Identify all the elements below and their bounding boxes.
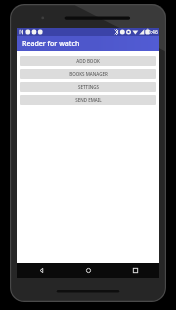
staticText: ADD BOOK	[76, 58, 100, 64]
button[interactable]: BOOKS MANAGER	[20, 69, 156, 79]
staticText: SEND EMAIL	[75, 97, 102, 103]
button[interactable]: Back	[17, 263, 65, 278]
staticText: Reader for watch	[22, 39, 80, 49]
staticText: 00:46	[145, 29, 158, 36]
button[interactable]: ADD BOOK	[20, 56, 156, 66]
staticText: BOOKS MANAGER	[69, 71, 108, 77]
button[interactable]: Recent apps	[112, 263, 159, 278]
staticText: SETTINGS	[78, 84, 99, 90]
button[interactable]: SEND EMAIL	[20, 95, 156, 105]
button[interactable]: SETTINGS	[20, 82, 156, 92]
button[interactable]: Home	[65, 263, 112, 278]
